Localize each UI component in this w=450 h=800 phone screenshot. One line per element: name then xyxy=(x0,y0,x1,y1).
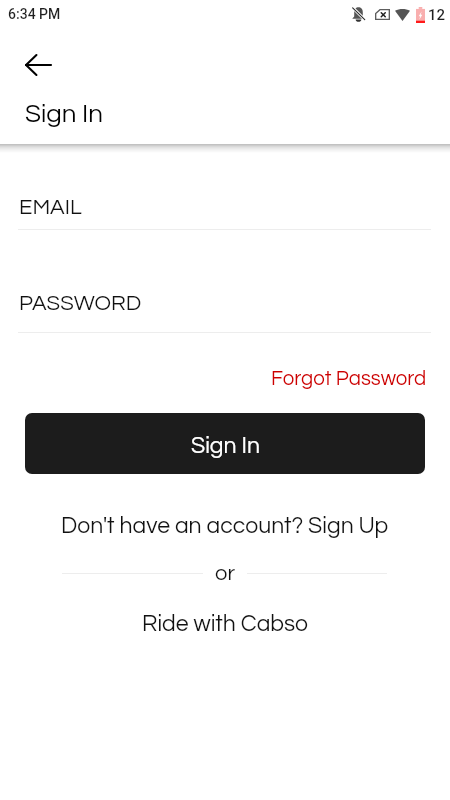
staticText: EMAIL xyxy=(19,196,82,219)
staticText: Sign In xyxy=(25,101,103,128)
button[interactable]: Forgot Password xyxy=(258,362,427,394)
button[interactable]: Sign In xyxy=(25,413,425,474)
staticText: Sign In xyxy=(191,434,260,458)
button[interactable]: EMAIL xyxy=(18,188,431,230)
staticText: or xyxy=(215,562,235,585)
staticText: PASSWORD xyxy=(19,292,142,315)
staticText: Ride with Cabso xyxy=(142,612,309,636)
button[interactable]: Back xyxy=(13,40,62,89)
button[interactable]: Ride with Cabso xyxy=(110,606,340,642)
button[interactable]: Don't have an account? Sign Up xyxy=(55,508,395,544)
staticText: 12 xyxy=(428,6,446,24)
button[interactable]: PASSWORD xyxy=(18,284,431,333)
staticText: Don't have an account? Sign Up xyxy=(61,514,389,538)
staticText: Forgot Password xyxy=(271,368,427,389)
staticText: 6:34 PM xyxy=(8,6,61,22)
